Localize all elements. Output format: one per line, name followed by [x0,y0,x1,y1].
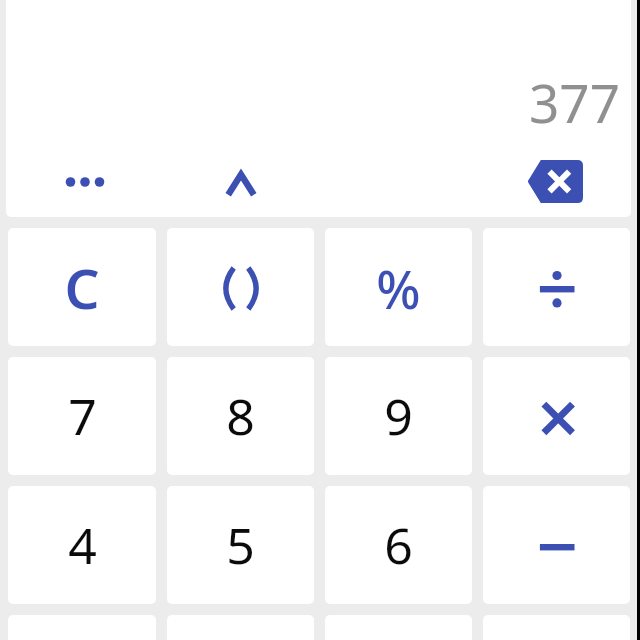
button[interactable]: 8 [167,357,314,475]
button[interactable]: 5 [167,486,314,604]
button[interactable]: 9 [325,357,472,475]
button[interactable]: Expand history [182,149,300,217]
staticText: C [64,250,100,325]
button[interactable]: 7 [8,357,156,475]
button[interactable]: % [325,228,472,346]
staticText: % [376,253,421,324]
staticText: 7 [68,382,97,450]
staticText: 8 [226,382,255,450]
button[interactable]: Minus [483,486,630,604]
button[interactable]: More options [26,147,144,216]
staticText: 6 [384,511,413,579]
staticText: 9 [384,382,413,450]
button[interactable]: Divide [483,228,630,346]
staticText: 4 [68,511,97,579]
button[interactable]: Multiply [483,357,630,475]
button[interactable]: Backspace [496,147,614,216]
button[interactable]: 4 [8,486,156,604]
button[interactable]: C [8,228,156,346]
button[interactable]: Parentheses [167,228,314,346]
staticText: 5 [226,511,255,579]
staticText: 377 [529,66,620,138]
button[interactable]: 6 [325,486,472,604]
